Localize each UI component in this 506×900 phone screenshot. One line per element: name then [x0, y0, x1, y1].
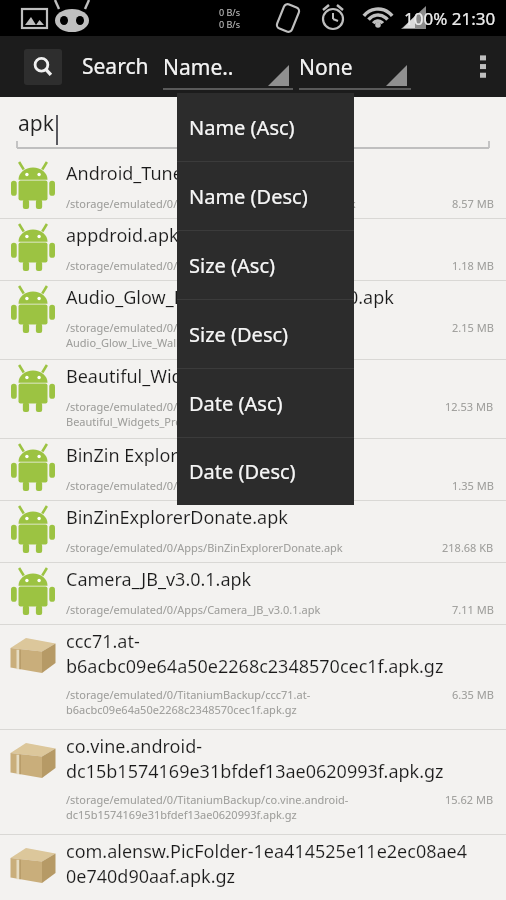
staticText: 12.53 MB: [445, 399, 494, 414]
button[interactable]: Name..: [163, 43, 293, 91]
button[interactable]: Size (Asc): [177, 231, 354, 299]
staticText: b6acbc09e64a50e2268c2348570cec1f.apk.gz: [66, 702, 297, 717]
staticText: Beautiful_Widgets_Pro_v5.4.4.apk: [66, 414, 239, 429]
staticText: Android_Tuner_v0.12.5.2.apk: [66, 161, 309, 186]
staticText: dc15b1574169e31bfdef13ae0620993f.apk.gz: [66, 759, 444, 784]
staticText: /storage/emulated/0/Apps/appdroid.apk: [66, 258, 276, 273]
button[interactable]: BinZin Explorer_v1.2.9.apk: [0, 439, 506, 500]
staticText: 6.35 MB: [452, 687, 494, 702]
button[interactable]: BinZinExplorerDonate.apk: [0, 501, 506, 562]
staticText: Date (Desc): [189, 458, 296, 485]
staticText: /storage/emulated/0/Apps/BinZin Explorer…: [66, 478, 344, 493]
staticText: apk: [18, 109, 54, 138]
staticText: dc15b1574169e31bfdef13ae0620993f.apk.gz: [66, 807, 297, 822]
staticText: 1.18 MB: [452, 258, 494, 273]
staticText: /storage/emulated/0/Apps/BinZinExplorerD…: [66, 540, 343, 555]
button[interactable]: Search: [24, 49, 62, 85]
button[interactable]: com.alensw.PicFolder-1ea414525e11e2ec08a…: [0, 835, 506, 900]
staticText: co.vine.android-: [66, 734, 203, 759]
staticText: /storage/emulated/0/Apps/Camera_JB_v3.0.…: [66, 602, 321, 617]
button[interactable]: Date (Asc): [177, 369, 354, 437]
staticText: 2.15 MB: [452, 320, 494, 335]
staticText: 7.11 MB: [452, 602, 494, 617]
button[interactable]: Beautiful_Widgets_Pro_v5.4.4.apk: [0, 360, 506, 438]
staticText: Audio_Glow_Live_Wallpaper_v2.0.0.apk: [66, 285, 394, 310]
staticText: Search: [82, 52, 149, 81]
staticText: 15.62 MB: [445, 792, 494, 807]
staticText: 0 B/s: [219, 6, 240, 18]
staticText: Size (Asc): [189, 252, 275, 279]
button[interactable]: appdroid.apk: [0, 219, 506, 280]
button[interactable]: None: [299, 43, 411, 91]
staticText: /storage/emulated/0/Apps/Android_Tuner_v…: [66, 196, 356, 211]
staticText: 8.57 MB: [452, 196, 494, 211]
button[interactable]: Date (Desc): [177, 438, 354, 505]
button[interactable]: More options: [460, 36, 506, 97]
button[interactable]: Size (Desc): [177, 300, 354, 368]
button[interactable]: Android_Tuner_v0.12.5.2.apk: [0, 157, 506, 218]
staticText: 0 B/s: [219, 18, 240, 30]
staticText: ccc71.at-: [66, 629, 140, 654]
button[interactable]: Name (Desc): [177, 162, 354, 230]
staticText: BinZinExplorerDonate.apk: [66, 505, 288, 530]
button[interactable]: Search: [82, 52, 149, 81]
staticText: 0e740d90aaf.apk.gz: [66, 864, 235, 889]
staticText: appdroid.apk: [66, 223, 179, 248]
staticText: 218.68 KB: [442, 540, 494, 555]
button[interactable]: ccc71.at-: [0, 625, 506, 729]
button[interactable]: Name (Asc): [177, 93, 354, 161]
button[interactable]: Camera_JB_v3.0.1.apk: [0, 563, 506, 624]
staticText: /storage/emulated/0/Apps/: [66, 320, 208, 335]
staticText: None: [299, 53, 353, 82]
staticText: Name..: [163, 53, 234, 82]
staticText: /storage/emulated/0/Apps/: [66, 399, 208, 414]
button[interactable]: co.vine.android-: [0, 730, 506, 834]
staticText: Beautiful_Widgets_Pro_v5.4.4.apk: [66, 364, 350, 389]
staticText: /storage/emulated/0/TitaniumBackup/ccc71…: [66, 687, 311, 702]
staticText: b6acbc09e64a50e2268c2348570cec1f.apk.gz: [66, 654, 444, 679]
staticText: Name (Desc): [189, 183, 308, 210]
button[interactable]: Audio_Glow_Live_Wallpaper_v2.0.0.apk: [0, 281, 506, 359]
staticText: Name (Asc): [189, 114, 295, 141]
staticText: 100% 21:30: [404, 7, 496, 30]
staticText: com.alensw.PicFolder-1ea414525e11e2ec08a…: [66, 839, 468, 864]
staticText: Size (Desc): [189, 321, 289, 348]
staticText: Camera_JB_v3.0.1.apk: [66, 567, 252, 592]
staticText: BinZin Explorer_v1.2.9.apk: [66, 443, 289, 468]
staticText: 1.35 MB: [452, 478, 494, 493]
staticText: Audio_Glow_Live_Wallpaper_v2.0.0.apk: [66, 335, 267, 350]
staticText: /storage/emulated/0/TitaniumBackup/co.vi…: [66, 792, 349, 807]
staticText: Date (Asc): [189, 390, 283, 417]
